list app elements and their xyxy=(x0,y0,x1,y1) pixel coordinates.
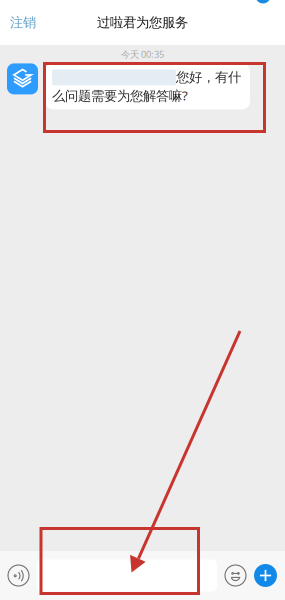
staticText: 今天 00:35 xyxy=(121,48,164,60)
button[interactable]: 注销 xyxy=(0,6,46,39)
staticText: 过啦君为您服务 xyxy=(97,14,188,31)
button[interactable]: More xyxy=(254,564,277,587)
staticText: 注销 xyxy=(10,14,36,31)
button[interactable]: Voice input xyxy=(8,565,29,586)
staticText: 么问题需要为您解答嘛? xyxy=(52,86,188,104)
staticText: 您好，有什 xyxy=(176,69,241,86)
button[interactable]: Emoji xyxy=(225,565,246,586)
